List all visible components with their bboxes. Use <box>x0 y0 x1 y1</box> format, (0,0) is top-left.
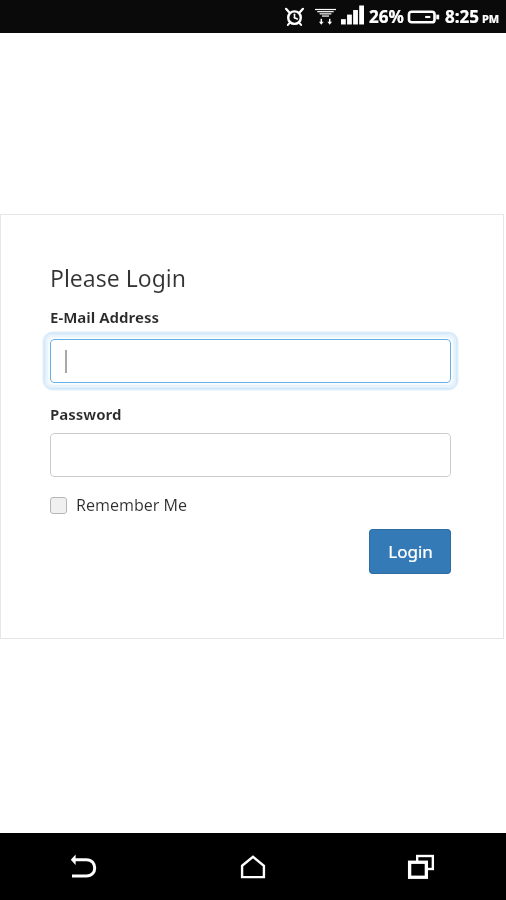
button[interactable]: Home <box>168 833 337 900</box>
button[interactable] <box>50 339 451 383</box>
button[interactable]: Recent apps <box>337 833 506 900</box>
staticText: Please Login <box>50 262 186 293</box>
staticText: 8:25 <box>445 5 479 28</box>
staticText: Remember Me <box>76 494 188 516</box>
staticText: Login <box>388 540 433 563</box>
button[interactable]: Login <box>369 529 451 574</box>
button[interactable]: Remember Me <box>50 494 188 516</box>
staticText: 26% <box>369 5 404 28</box>
staticText: E-Mail Address <box>50 307 159 327</box>
staticText: PM <box>482 11 500 26</box>
staticText: Password <box>50 404 122 424</box>
button[interactable] <box>50 433 451 477</box>
button[interactable]: Back <box>0 833 168 900</box>
